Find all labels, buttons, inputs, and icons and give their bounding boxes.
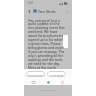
button[interactable]: Keyboard xyxy=(29,79,38,85)
staticText: Sounds good xyxy=(28,73,44,76)
button[interactable]: Emoji xyxy=(58,79,67,85)
staticText: Hey everyone! Just a quick update on the… xyxy=(28,18,66,69)
staticText: Tree Nerds xyxy=(38,9,56,14)
button[interactable]: Voice input xyxy=(44,79,53,85)
staticText: I'll be there xyxy=(50,73,64,76)
button[interactable]: Back xyxy=(27,9,32,14)
button[interactable]: More options xyxy=(65,9,70,14)
staticText: 9:41 xyxy=(28,1,34,5)
button[interactable]: I'll be there xyxy=(47,71,66,77)
button[interactable]: Sounds good xyxy=(26,71,45,77)
